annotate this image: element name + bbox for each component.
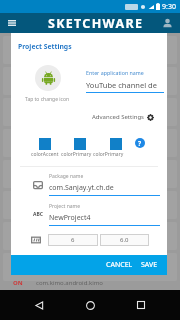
staticText: YouTube channel de [86,80,157,90]
staticText: Project name [49,203,81,210]
button[interactable]: Help [135,138,145,148]
staticText: colorPrimary [61,151,92,158]
button[interactable]: 6 [48,234,98,246]
button[interactable]: Home [78,293,102,317]
button[interactable]: ABC [32,203,160,226]
staticText: Advanced Settings [92,113,144,121]
staticText: SAVE [141,260,158,270]
staticText: colorPrimary [93,151,124,158]
staticText: com.Sanjay.yt.ch.de [49,183,114,193]
staticText: ABC [33,211,43,218]
staticText: Tap to change icon [25,96,70,103]
staticText: 9:30 [162,2,176,12]
staticText: CANCEL [106,260,133,270]
staticText: Package name [49,173,84,180]
button[interactable]: Recents [129,293,153,317]
button[interactable]: 6.0 [100,234,149,246]
button[interactable]: SAVE [137,256,167,274]
button[interactable]: Back [27,293,51,317]
button[interactable]: CANCEL [102,256,137,274]
button[interactable]: Package name [32,173,160,196]
staticText: ON [13,279,23,287]
staticText: 6 [71,236,75,244]
staticText: Enter application name [86,69,144,76]
button[interactable]: Menu [2,13,22,33]
staticText: colorAccent [31,151,59,158]
staticText: com.kimo.android.kimo [36,279,103,287]
button[interactable]: Tap to change icon [24,65,71,103]
staticText: 6.0 [120,236,129,244]
staticText: ? [138,139,142,148]
button[interactable]: Account [159,15,175,31]
button[interactable]: Advanced Settings [92,113,154,121]
staticText: NewProject4 [49,213,91,223]
staticText: SKETCHWARE [48,15,144,32]
staticText: Project Settings [18,42,72,51]
